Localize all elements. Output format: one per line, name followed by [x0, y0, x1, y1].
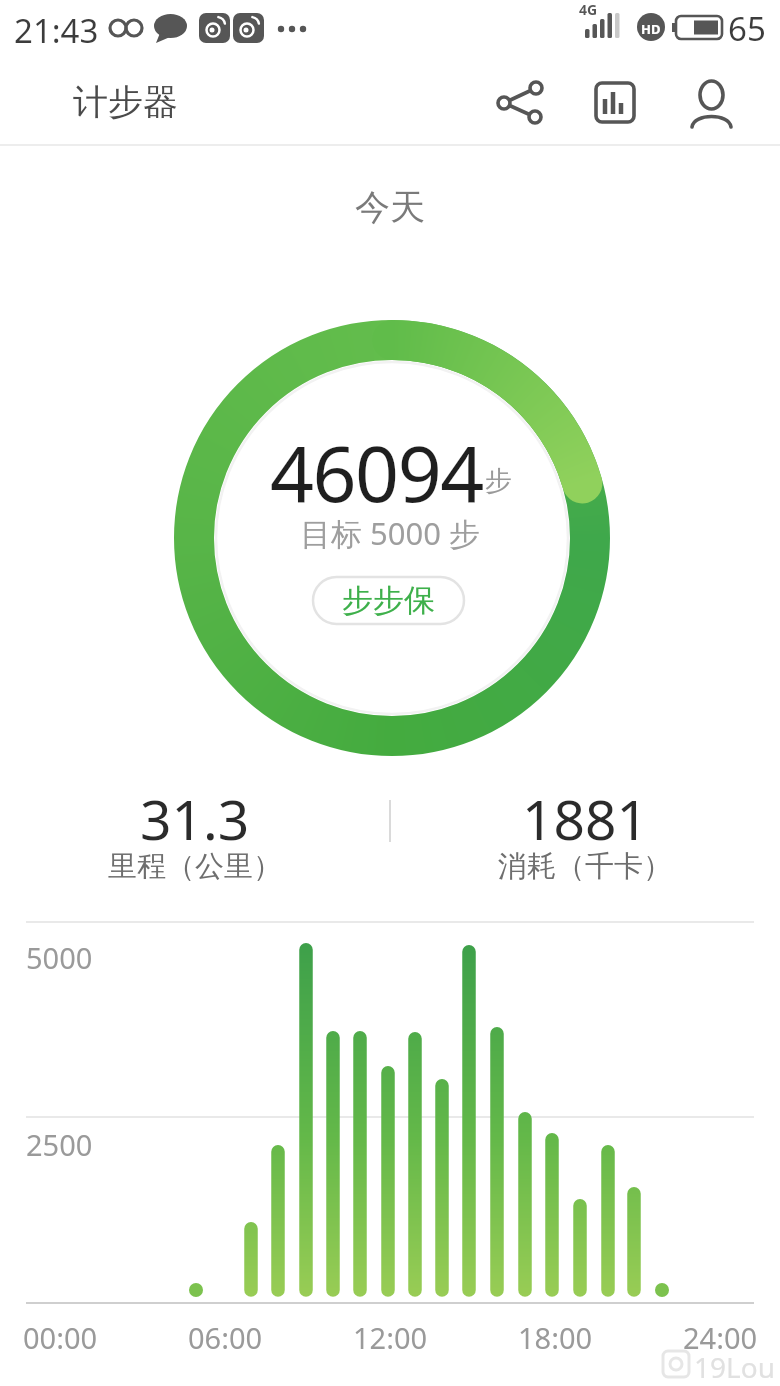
staticText: 消耗（千卡） — [498, 848, 672, 885]
staticText: 5000 — [26, 938, 93, 977]
staticText: 1881 — [522, 781, 648, 851]
staticText: 31.3 — [140, 781, 250, 851]
staticText: 2500 — [26, 1125, 93, 1164]
staticText: 步 — [485, 464, 512, 498]
button[interactable] — [682, 72, 742, 132]
staticText: 里程（公里） — [108, 848, 282, 885]
staticText: 46094 — [270, 420, 483, 510]
staticText: 65 — [728, 6, 766, 46]
staticText: 19Lou — [694, 1348, 775, 1386]
staticText: 00:00 — [23, 1318, 98, 1357]
staticText: 12:00 — [353, 1318, 428, 1357]
staticText: 步步保 — [342, 581, 435, 620]
staticText: 4G — [579, 0, 598, 18]
staticText: 24:00 — [683, 1318, 758, 1357]
staticText: 今天 — [355, 185, 425, 229]
button[interactable]: 步步保 — [313, 577, 464, 624]
button[interactable] — [585, 72, 645, 132]
staticText: 21:43 — [14, 8, 99, 53]
staticText: 计步器 — [73, 80, 178, 124]
staticText: 06:00 — [188, 1318, 263, 1357]
staticText: 18:00 — [518, 1318, 593, 1357]
staticText: HD — [641, 20, 661, 38]
button[interactable] — [490, 72, 550, 132]
staticText: 目标 5000 步 — [300, 512, 481, 554]
